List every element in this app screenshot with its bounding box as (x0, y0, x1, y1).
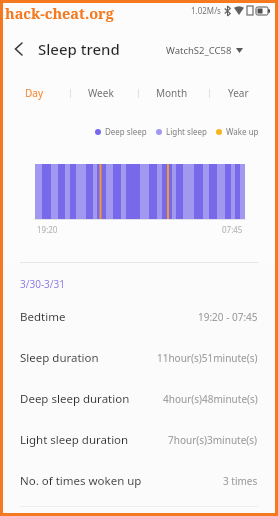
staticText: Light sleep (166, 126, 207, 137)
button[interactable]: Deep sleep duration (20, 378, 258, 419)
staticText: 3/30-3/31 (20, 277, 65, 291)
button[interactable]: WatchS2_CC58 (166, 44, 243, 57)
staticText: Deep sleep (105, 126, 147, 137)
staticText: Day (25, 86, 44, 100)
staticText: 07:45 (222, 224, 243, 235)
button[interactable]: Sleep duration (20, 337, 258, 378)
staticText: No. of times woken up (20, 473, 142, 489)
staticText: 3 times (223, 474, 258, 488)
button[interactable]: Year (228, 86, 249, 100)
staticText: Light sleep duration (20, 432, 129, 448)
button[interactable]: Bedtime (20, 296, 258, 337)
staticText: 1.02M/s (191, 5, 221, 16)
staticText: hack-cheat.org (5, 3, 114, 23)
staticText: Week (88, 86, 114, 100)
staticText: 19:20 - 07:45 (198, 310, 258, 324)
button[interactable]: Week (88, 86, 114, 100)
staticText: 11hour(s)51minute(s) (157, 351, 258, 365)
staticText: Deep sleep duration (20, 391, 130, 407)
staticText: Month (156, 86, 188, 100)
staticText: Sleep duration (20, 350, 99, 366)
staticText: 4hour(s)48minute(s) (163, 392, 258, 406)
staticText: | (136, 86, 141, 98)
staticText: Year (228, 86, 249, 100)
staticText: Sleep trend (38, 39, 120, 59)
staticText: Bedtime (20, 309, 66, 325)
staticText: Wake up (226, 126, 259, 137)
staticText: WatchS2_CC58 (166, 44, 232, 57)
staticText: | (68, 86, 73, 98)
button[interactable]: Light sleep duration (20, 419, 258, 460)
button[interactable] (8, 38, 30, 60)
staticText: | (207, 86, 212, 98)
button[interactable]: Day (25, 86, 44, 100)
button[interactable]: Month (156, 86, 188, 100)
button[interactable]: No. of times woken up (20, 460, 258, 501)
staticText: 7hour(s)3minute(s) (168, 433, 258, 447)
staticText: 19:20 (37, 224, 58, 235)
